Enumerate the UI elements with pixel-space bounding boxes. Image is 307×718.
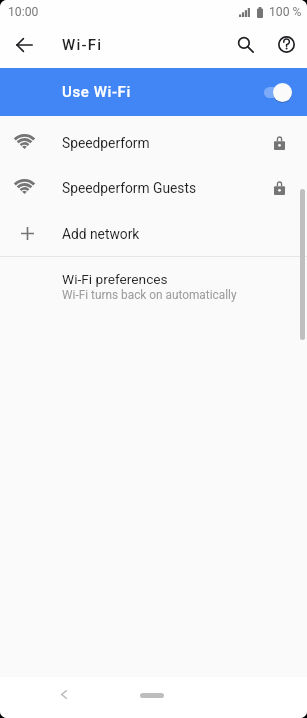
button[interactable]: Back (8, 31, 40, 63)
button[interactable]: Wi-Fi preferences (0, 257, 307, 305)
button[interactable]: Speedperform (0, 116, 307, 161)
button[interactable]: Use Wi-Fi (0, 68, 307, 116)
button[interactable]: Search (228, 29, 264, 65)
staticText: Speedperform Guests (62, 180, 197, 196)
staticText: Wi-Fi turns back on automatically (62, 288, 237, 302)
button[interactable]: Help (268, 29, 304, 65)
button[interactable]: Speedperform Guests (0, 161, 307, 206)
staticText: Use Wi-Fi (62, 83, 131, 101)
staticText: Add network (62, 226, 140, 242)
staticText: Speedperform (62, 135, 150, 151)
button[interactable]: Add network (0, 206, 307, 251)
staticText: 10:00 (8, 5, 39, 19)
staticText: 100 % (269, 5, 302, 19)
staticText: Wi-Fi preferences (62, 271, 168, 287)
button[interactable]: Home (131, 678, 173, 712)
button[interactable]: Back (47, 677, 81, 711)
staticText: Wi-Fi (62, 36, 103, 54)
